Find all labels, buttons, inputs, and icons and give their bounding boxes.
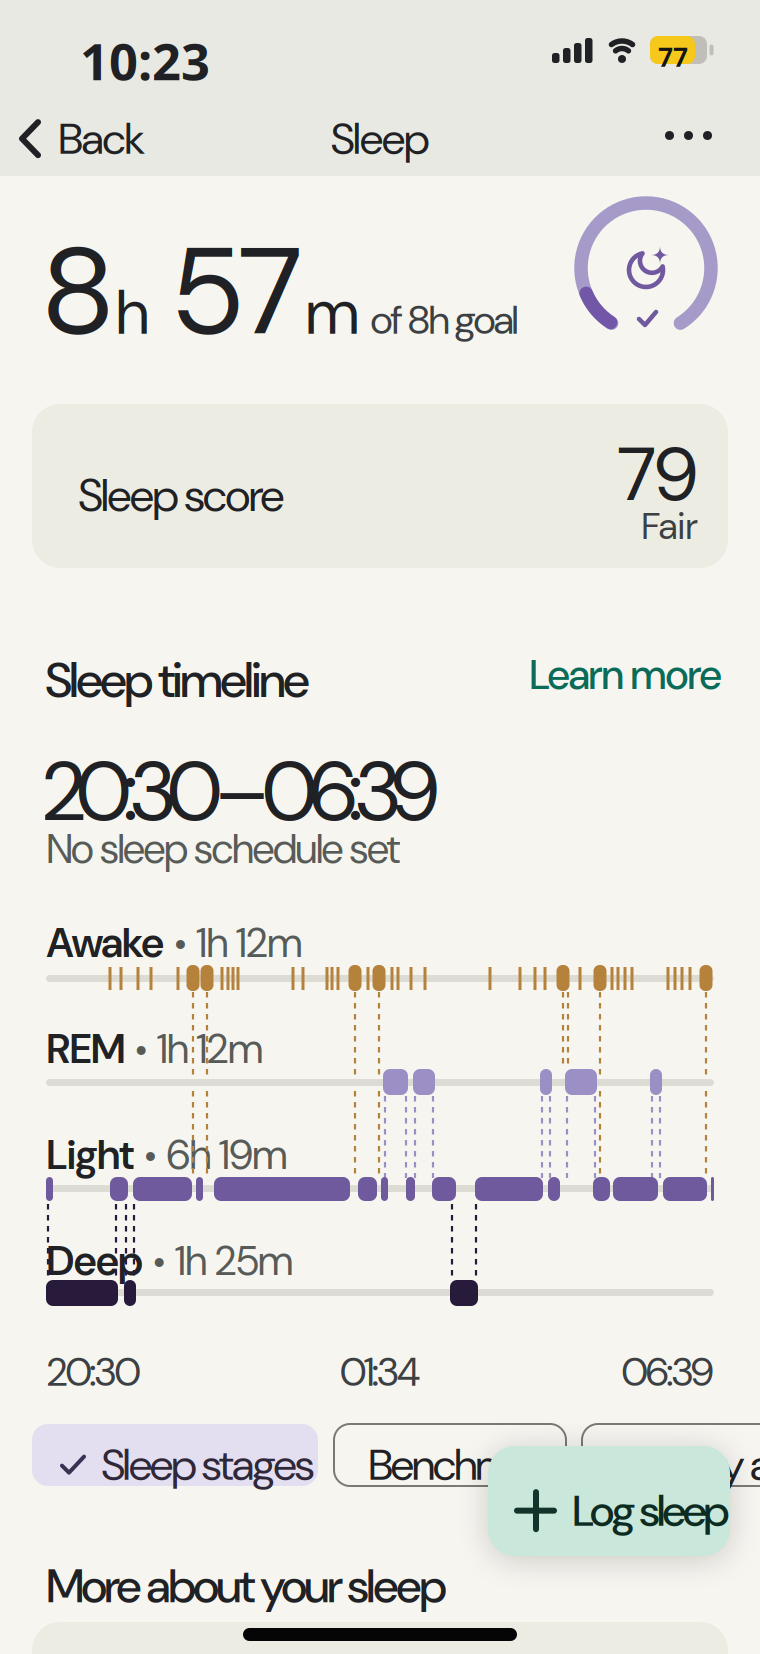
staticText: 20:30–06:39 — [43, 738, 439, 846]
button[interactable] — [661, 117, 716, 154]
staticText: h — [116, 271, 149, 353]
button[interactable]: 30-day avg — [582, 1424, 760, 1486]
button[interactable]: Log sleep — [488, 1446, 730, 1556]
staticText: • — [174, 920, 187, 969]
staticText: • — [134, 1026, 147, 1075]
button[interactable]: Back — [18, 110, 145, 167]
staticText: 79 — [617, 426, 698, 523]
staticText: Log sleep — [572, 1482, 730, 1539]
staticText: Sleep stages — [101, 1436, 315, 1493]
staticText: • — [144, 1132, 157, 1181]
button[interactable]: Learn more — [529, 642, 722, 708]
staticText: Learn more — [529, 648, 722, 702]
staticText: Sleep — [330, 110, 429, 167]
staticText: 1h 12m — [196, 916, 303, 970]
staticText: • — [153, 1238, 166, 1287]
staticText: Fair — [641, 502, 698, 551]
button[interactable]: Sleep score — [32, 404, 728, 568]
staticText: No sleep schedule set — [46, 822, 401, 876]
staticText: m — [306, 271, 359, 353]
staticText: 20:30 — [46, 1346, 141, 1398]
staticText: 77 — [658, 39, 688, 75]
staticText: of 8h goal — [363, 294, 519, 346]
button[interactable]: Sleep stages — [32, 1424, 318, 1486]
staticText: 1h 12m — [156, 1022, 263, 1076]
staticText: REM — [46, 1022, 125, 1076]
staticText: 10:23 — [80, 27, 210, 94]
staticText: 06:39 — [621, 1346, 714, 1398]
button[interactable]: Benchmark — [334, 1424, 566, 1486]
staticText: Awake — [46, 916, 165, 970]
staticText: 6h 19m — [166, 1128, 288, 1182]
staticText: 30-day avg — [608, 1436, 760, 1493]
staticText: Benchmark — [368, 1436, 564, 1493]
staticText: 8 — [44, 212, 112, 372]
staticText: More about your sleep — [46, 1556, 447, 1617]
staticText: 01:34 — [339, 1346, 420, 1398]
staticText: 1h 25m — [175, 1234, 294, 1288]
staticText: 57 — [153, 212, 302, 372]
staticText: Sleep score — [78, 466, 285, 525]
staticText: Sleep timeline — [45, 648, 310, 712]
staticText: Light — [46, 1128, 135, 1182]
staticText: Back — [58, 110, 145, 167]
staticText: Deep — [46, 1234, 144, 1288]
